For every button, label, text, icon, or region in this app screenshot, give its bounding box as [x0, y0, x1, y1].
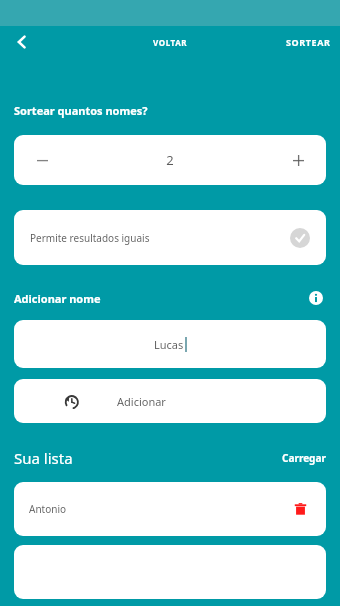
button[interactable]: Adicionar [14, 379, 326, 423]
staticText: VOLTAR [153, 37, 188, 48]
button[interactable]: SORTEAR [277, 30, 340, 54]
button[interactable]: Lucas [14, 320, 326, 368]
staticText: SORTEAR [286, 36, 331, 48]
button[interactable]: Decrease [14, 135, 70, 185]
staticText: Antonio [29, 502, 67, 516]
staticText: Lucas [154, 337, 184, 352]
staticText: 2 [166, 151, 174, 169]
button[interactable]: Back [8, 28, 36, 56]
button[interactable]: Delete Antonio [289, 498, 311, 520]
button[interactable]: Information [306, 288, 326, 308]
staticText: Carregar [282, 451, 326, 465]
staticText: Adicionar nome [14, 291, 101, 306]
staticText: Sortear quantos nomes? [14, 103, 148, 118]
button[interactable]: VOLTAR [153, 37, 188, 48]
button[interactable]: Permite resultados iguais [14, 210, 326, 265]
staticText: Adicionar [117, 394, 166, 409]
button[interactable]: Carregar [282, 451, 326, 465]
button[interactable] [14, 545, 326, 599]
button[interactable]: Antonio [14, 482, 326, 536]
button[interactable]: Increase [270, 135, 326, 185]
staticText: Sua lista [14, 448, 73, 468]
staticText: Permite resultados iguais [30, 231, 150, 245]
